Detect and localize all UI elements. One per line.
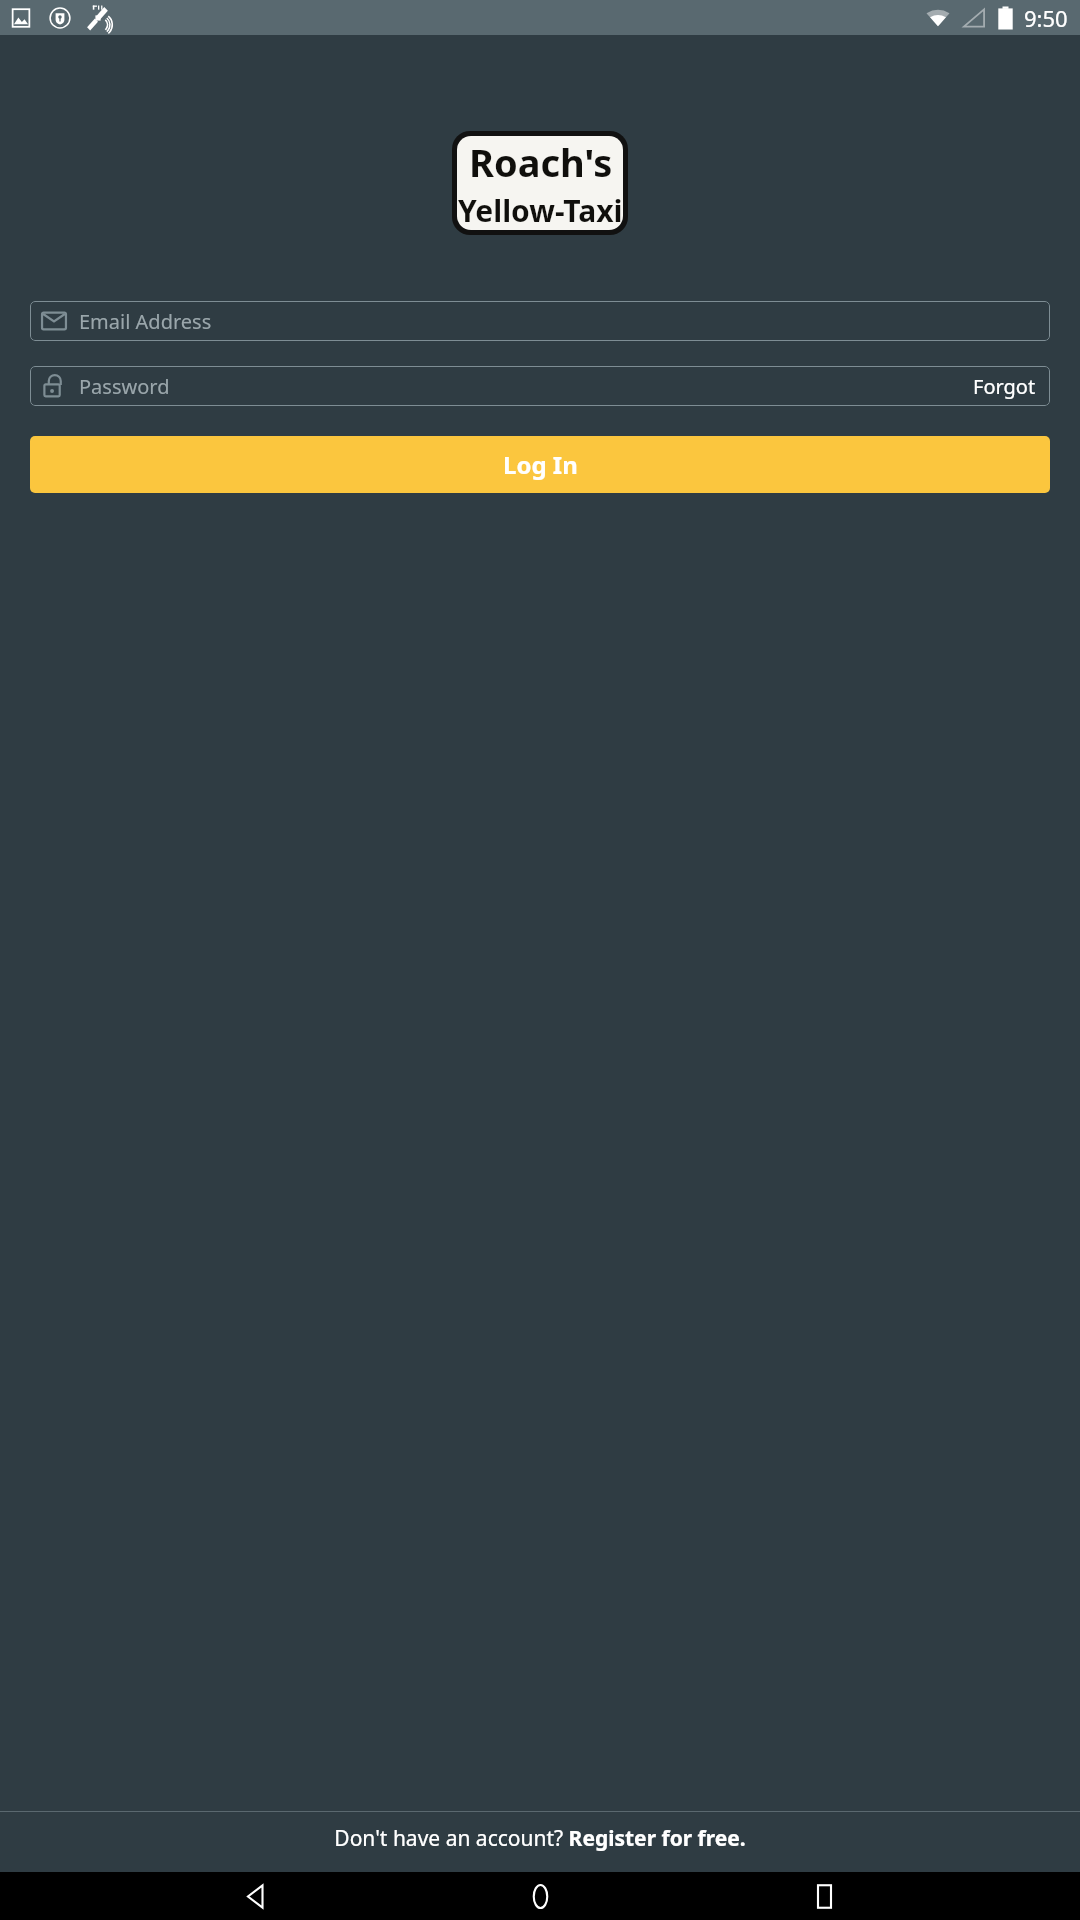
button[interactable]: Recent apps xyxy=(796,1872,852,1920)
staticText: Yellow-Taxi xyxy=(458,190,623,230)
staticText: Password xyxy=(79,373,170,400)
button[interactable]: Forgot xyxy=(959,367,1050,406)
staticText: Email Address xyxy=(79,308,212,335)
staticText: Log In xyxy=(503,448,578,481)
staticText: Don't have an account? Register for free… xyxy=(334,1824,746,1853)
button[interactable]: Back xyxy=(228,1872,284,1920)
staticText: Forgot xyxy=(973,373,1036,400)
button[interactable]: Log In xyxy=(30,436,1050,493)
button[interactable]: Email Address xyxy=(30,301,1050,341)
staticText: 9:50 xyxy=(1024,3,1068,33)
button[interactable]: Don't have an account? Register for free… xyxy=(0,1812,1080,1865)
button[interactable]: Home xyxy=(512,1872,568,1920)
button[interactable]: Password xyxy=(30,366,1050,406)
staticText: Roach's xyxy=(469,136,613,188)
